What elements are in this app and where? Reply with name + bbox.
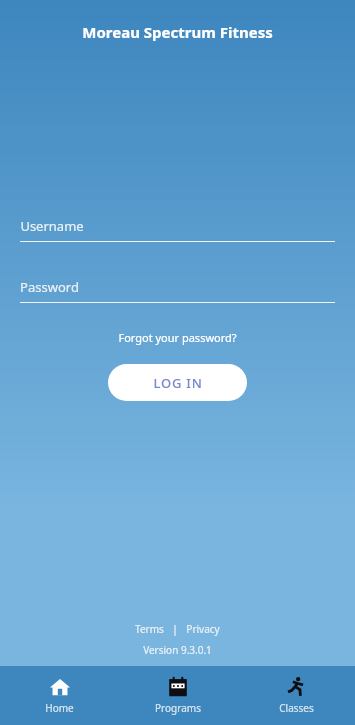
staticText: Username [20, 217, 84, 235]
staticText: Version 9.3.0.1 [143, 643, 212, 657]
staticText: Programs [155, 701, 201, 715]
staticText: Privacy [186, 622, 220, 636]
staticText: LOG IN [153, 374, 203, 392]
staticText: Classes [279, 701, 314, 715]
button[interactable]: Home [0, 670, 119, 721]
button[interactable]: Terms [131, 620, 168, 638]
button[interactable]: Classes [237, 670, 355, 721]
button[interactable]: LOG IN [108, 364, 247, 401]
button[interactable]: Forgot your password? [110, 327, 245, 348]
staticText: Terms [135, 622, 164, 636]
button[interactable]: Password [20, 278, 335, 303]
button[interactable]: Privacy [182, 620, 224, 638]
staticText: Home [45, 701, 74, 715]
staticText: Password [20, 278, 79, 296]
staticText: Forgot your password? [118, 330, 237, 345]
staticText: Moreau Spectrum Fitness [82, 22, 273, 42]
staticText: | [172, 622, 178, 636]
button[interactable]: Username [20, 217, 335, 242]
button[interactable]: Programs [119, 670, 237, 721]
